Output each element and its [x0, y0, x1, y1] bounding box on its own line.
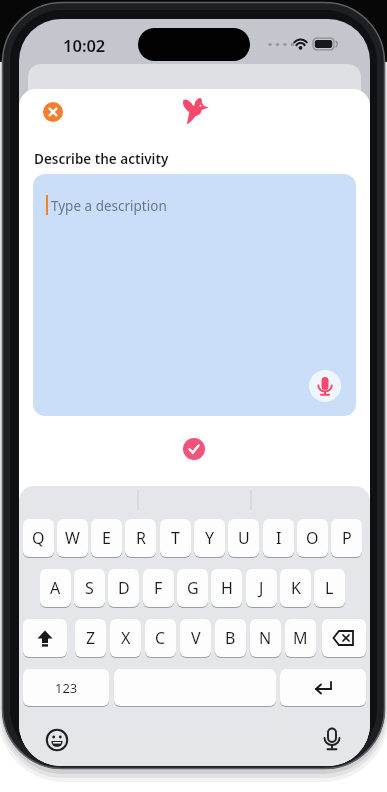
button[interactable]: A	[40, 569, 71, 608]
button[interactable]: F	[143, 569, 174, 608]
button[interactable]	[178, 96, 210, 128]
staticText: O	[306, 527, 319, 549]
button[interactable]: W	[57, 519, 88, 558]
staticText: 123	[55, 679, 78, 697]
button[interactable]: K	[280, 569, 311, 608]
button[interactable]	[45, 728, 69, 752]
button[interactable]	[114, 669, 276, 707]
staticText: B	[225, 627, 236, 649]
staticText: G	[187, 577, 199, 599]
button[interactable]: D	[108, 569, 139, 608]
staticText: W	[65, 527, 80, 549]
staticText: P	[342, 527, 352, 549]
button[interactable]: R	[125, 519, 156, 558]
button[interactable]: V	[180, 619, 211, 658]
staticText: Y	[205, 527, 215, 549]
button[interactable]	[309, 370, 341, 402]
staticText: T	[171, 527, 180, 549]
button[interactable]: E	[91, 519, 122, 558]
staticText: Q	[32, 527, 45, 549]
staticText: R	[136, 527, 146, 549]
button[interactable]	[280, 669, 366, 707]
button[interactable]	[183, 438, 205, 460]
staticText: Describe the activity	[34, 150, 169, 168]
button[interactable]: M	[285, 619, 316, 658]
button[interactable]: Q	[23, 519, 54, 558]
staticText: U	[238, 527, 250, 549]
button[interactable]: O	[297, 519, 328, 558]
button[interactable]: G	[177, 569, 208, 608]
staticText: L	[325, 577, 334, 599]
button[interactable]: U	[228, 519, 259, 558]
button[interactable]: Y	[194, 519, 225, 558]
staticText: S	[85, 577, 94, 599]
button[interactable]: Z	[75, 619, 106, 658]
staticText: H	[221, 577, 233, 599]
staticText: D	[118, 577, 130, 599]
staticText: J	[259, 577, 264, 599]
button[interactable]	[43, 102, 63, 122]
button[interactable]: H	[211, 569, 242, 608]
button[interactable]: S	[74, 569, 105, 608]
button[interactable]: N	[250, 619, 281, 658]
button[interactable]	[321, 727, 343, 753]
staticText: 10:02	[63, 34, 106, 56]
button[interactable]	[322, 619, 366, 658]
button[interactable]: J	[246, 569, 277, 608]
staticText: N	[259, 627, 272, 649]
staticText: V	[191, 627, 201, 649]
button[interactable]: I	[263, 519, 294, 558]
button[interactable]: B	[215, 619, 246, 658]
button[interactable]	[23, 619, 67, 658]
button[interactable]: L	[314, 569, 345, 608]
staticText: E	[102, 527, 111, 549]
button[interactable]: P	[331, 519, 362, 558]
button[interactable]: Type a description	[33, 174, 356, 416]
staticText: M	[293, 627, 308, 649]
button[interactable]: T	[160, 519, 191, 558]
staticText: Z	[86, 627, 96, 649]
staticText: X	[121, 627, 131, 649]
button[interactable]: 10:02	[46, 34, 122, 56]
button[interactable]: C	[145, 619, 176, 658]
staticText: A	[50, 577, 61, 599]
staticText: I	[276, 527, 282, 549]
button[interactable]: 123	[23, 669, 109, 707]
staticText: K	[291, 577, 301, 599]
staticText: C	[155, 627, 166, 649]
button[interactable]: X	[110, 619, 141, 658]
staticText: F	[154, 577, 163, 599]
staticText: Type a description	[51, 197, 167, 215]
